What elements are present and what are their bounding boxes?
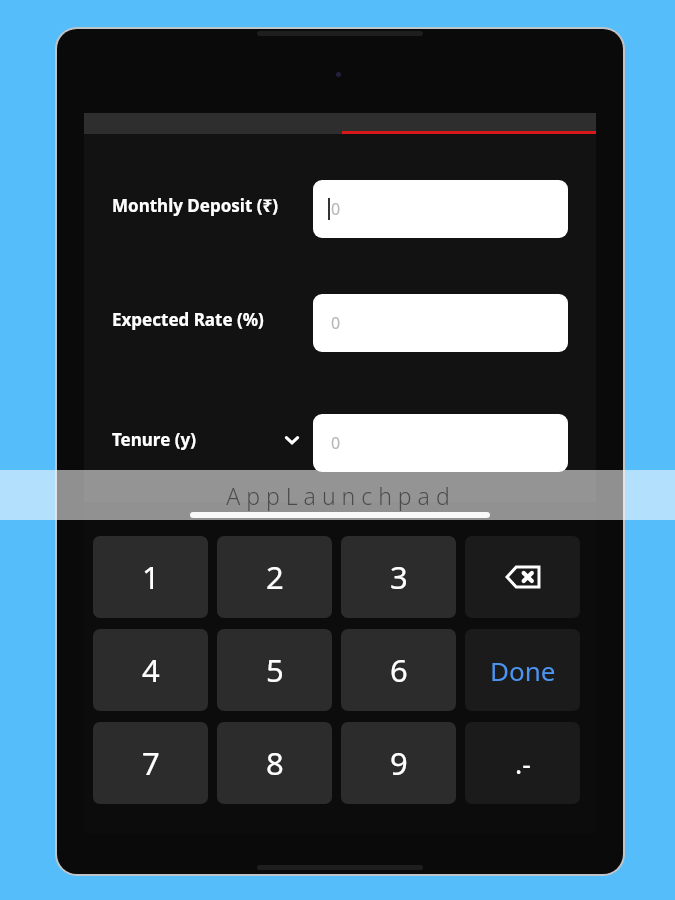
staticText: 9 — [390, 742, 408, 784]
button[interactable]: 0 — [313, 294, 568, 352]
button[interactable]: 9 — [341, 722, 456, 804]
staticText: 7 — [142, 742, 160, 784]
button[interactable]: 1 — [93, 536, 208, 618]
button[interactable]: 7 — [93, 722, 208, 804]
staticText: 8 — [266, 742, 284, 784]
button[interactable] — [84, 113, 596, 134]
button[interactable]: Select tenure unit — [274, 422, 310, 458]
button[interactable]: 4 — [93, 629, 208, 711]
staticText: 1 — [142, 556, 160, 598]
button[interactable]: 8 — [217, 722, 332, 804]
staticText: 0 — [331, 198, 341, 220]
staticText: .- — [515, 745, 531, 782]
button[interactable]: 6 — [341, 629, 456, 711]
staticText: 6 — [390, 649, 408, 691]
button[interactable]: Backspace — [465, 536, 580, 618]
button[interactable]: Done — [465, 629, 580, 711]
button[interactable]: 2 — [217, 536, 332, 618]
staticText: Monthly Deposit (₹) — [112, 194, 278, 217]
staticText: 5 — [266, 649, 284, 691]
staticText: Tenure (y) — [112, 428, 196, 451]
staticText: 0 — [331, 432, 341, 454]
staticText: 0 — [331, 312, 341, 334]
button[interactable]: 3 — [341, 536, 456, 618]
staticText: 2 — [266, 556, 284, 598]
button[interactable]: 0 — [313, 180, 568, 238]
button[interactable]: .- — [465, 722, 580, 804]
staticText: Expected Rate (%) — [112, 308, 264, 331]
button[interactable]: 5 — [217, 629, 332, 711]
staticText: 4 — [142, 649, 160, 691]
button[interactable]: 0 — [313, 414, 568, 472]
staticText: 3 — [390, 556, 408, 598]
staticText: A p p L a u n c h p a d — [226, 480, 450, 511]
staticText: Done — [490, 653, 556, 688]
